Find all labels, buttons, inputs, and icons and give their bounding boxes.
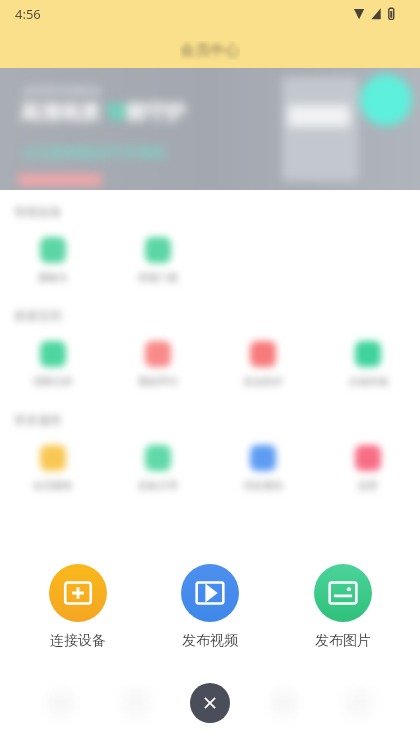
staticText: 设置 bbox=[358, 479, 378, 492]
staticText: 发布视频 bbox=[182, 632, 238, 650]
staticText: 会员中心 bbox=[180, 41, 240, 60]
button[interactable]: Close bbox=[190, 683, 230, 723]
button[interactable]: 连接设备 bbox=[23, 564, 133, 650]
staticText: 摄像头 bbox=[38, 271, 68, 284]
staticText: 消息通知 bbox=[243, 479, 283, 492]
staticText: 云端存储 bbox=[348, 375, 388, 388]
button[interactable]: 摄像头 bbox=[0, 237, 105, 284]
staticText: 能守护 bbox=[126, 100, 186, 125]
staticText: 设备共享 bbox=[138, 479, 178, 492]
button[interactable]: 报警记录 bbox=[0, 341, 105, 388]
staticText: 连接设备 bbox=[50, 632, 106, 650]
button[interactable]: 紧急呼叫 bbox=[105, 341, 210, 388]
button[interactable]: 设置 bbox=[315, 445, 420, 492]
button[interactable]: 发布视频 bbox=[155, 564, 265, 650]
staticText: 智 bbox=[106, 100, 126, 125]
button[interactable]: 设备共享 bbox=[105, 445, 210, 492]
button[interactable]: 安全防护 bbox=[210, 341, 315, 388]
staticText: 欢迎来到智能设备 bbox=[22, 84, 102, 97]
staticText: 智能门锁 bbox=[138, 271, 178, 284]
staticText: 家庭安防 bbox=[14, 308, 62, 323]
button[interactable]: 欢迎来到智能设备 bbox=[0, 68, 420, 190]
staticText: 更多服务 bbox=[14, 412, 62, 427]
staticText: 智能设备 bbox=[14, 204, 62, 219]
button[interactable]: 消息通知 bbox=[210, 445, 315, 492]
button[interactable]: 智能门锁 bbox=[105, 237, 210, 284]
staticText: 高清画质 bbox=[20, 100, 100, 125]
button[interactable]: 发布图片 bbox=[288, 564, 398, 650]
staticText: 会员服务 bbox=[33, 479, 73, 492]
staticText: 发布图片 bbox=[315, 632, 371, 650]
staticText: 报警记录 bbox=[33, 375, 73, 388]
staticText: 4:56 bbox=[15, 5, 41, 23]
button[interactable]: 会员服务 bbox=[0, 445, 105, 492]
staticText: 紧急呼叫 bbox=[138, 375, 178, 388]
button[interactable]: 云端存储 bbox=[315, 341, 420, 388]
staticText: 全天候智能监控守护家庭 bbox=[22, 144, 165, 160]
staticText: 安全防护 bbox=[243, 375, 283, 388]
